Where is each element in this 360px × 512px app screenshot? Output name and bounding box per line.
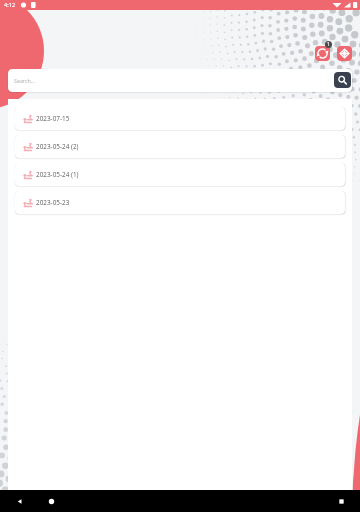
button[interactable]: Settings — [337, 46, 352, 61]
staticText: 2023-05-24 (1) — [36, 170, 79, 179]
button[interactable]: Sync — [315, 46, 330, 61]
staticText: 4:12 — [4, 1, 16, 9]
button[interactable]: 2023-07-15 — [15, 107, 345, 130]
staticText: 2023-05-24 (2) — [36, 142, 79, 151]
staticText: 1 — [327, 41, 330, 48]
button[interactable]: Home — [40, 490, 62, 512]
staticText: 2023-07-15 — [36, 114, 70, 123]
button[interactable]: Recents — [330, 490, 352, 512]
staticText: 2023-05-23 — [36, 198, 70, 207]
button[interactable]: 2023-05-23 — [15, 191, 345, 214]
button[interactable]: 2023-05-24 (2) — [15, 135, 345, 158]
staticText: Search... — [14, 77, 36, 84]
button[interactable]: 2023-05-24 (1) — [15, 163, 345, 186]
button[interactable]: Search... — [8, 69, 352, 92]
button[interactable]: Search — [334, 72, 351, 88]
button[interactable]: Back — [8, 490, 30, 512]
